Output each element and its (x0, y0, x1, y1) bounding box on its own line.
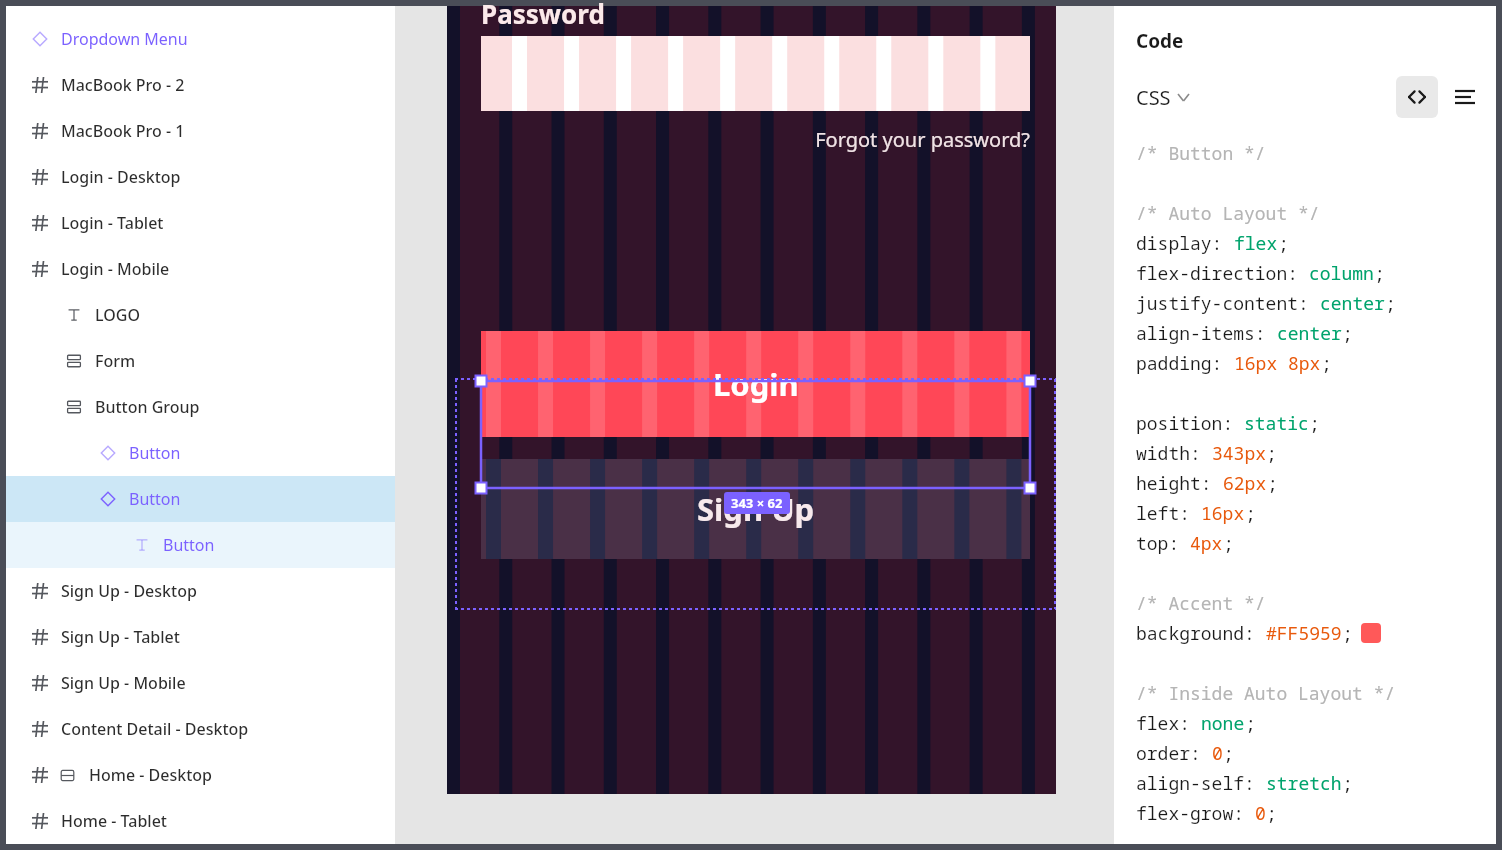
staticText: Login - Tablet (61, 212, 164, 234)
button[interactable]: Login (481, 331, 1030, 437)
staticText: Button (163, 534, 215, 556)
staticText: Home - Desktop (89, 764, 212, 786)
staticText: #FF5959 (1266, 621, 1342, 646)
staticText: ; (1266, 441, 1277, 466)
staticText: left: (1136, 501, 1201, 526)
staticText: Form (95, 350, 136, 372)
staticText: ; (1223, 531, 1234, 556)
staticText: Login (713, 363, 799, 405)
button[interactable]: Sign Up - Mobile (6, 660, 395, 706)
staticText: 0 (1255, 801, 1266, 826)
staticText: none (1201, 711, 1245, 736)
staticText: Sign Up - Desktop (61, 580, 197, 602)
staticText: ; (1385, 291, 1396, 316)
staticText: Login - Mobile (61, 258, 170, 280)
staticText: Home - Tablet (61, 810, 167, 832)
staticText: align-self: (1136, 771, 1266, 796)
button[interactable]: Button Group (6, 384, 395, 430)
button[interactable] (481, 36, 1030, 111)
staticText: ; (1223, 741, 1234, 766)
staticText: Login - Desktop (61, 166, 181, 188)
staticText: Button (129, 488, 181, 510)
staticText: flex: (1136, 711, 1201, 736)
button[interactable]: Show code (1396, 76, 1438, 118)
staticText: static (1244, 411, 1309, 436)
staticText: LOGO (95, 304, 140, 326)
staticText: top: (1136, 531, 1190, 556)
button[interactable]: CSS (1136, 84, 1189, 111)
button[interactable]: MacBook Pro - 2 (6, 62, 395, 108)
staticText: ; (1245, 501, 1256, 526)
staticText: 16px (1201, 501, 1245, 526)
staticText: Code (1136, 28, 1184, 54)
button[interactable]: Sign Up - Tablet (6, 614, 395, 660)
staticText: flex-direction: (1136, 261, 1309, 286)
staticText: center (1277, 321, 1342, 346)
staticText: Sign Up (697, 488, 815, 530)
staticText: 62px (1223, 471, 1267, 496)
button[interactable]: Button (6, 430, 395, 476)
staticText: CSS (1136, 84, 1171, 111)
staticText: ; (1278, 231, 1289, 256)
staticText: display: (1136, 231, 1234, 256)
staticText: 4px (1190, 531, 1223, 556)
button[interactable]: Login - Desktop (6, 154, 395, 200)
staticText: ; (1342, 621, 1353, 646)
staticText: background: (1136, 621, 1266, 646)
button[interactable]: Home - Tablet (6, 798, 395, 844)
button[interactable]: Content Detail - Desktop (6, 706, 395, 752)
button[interactable]: MacBook Pro - 1 (6, 108, 395, 154)
button[interactable]: Forgot your password? (455, 126, 1030, 153)
staticText: /* Auto Layout */ (1136, 201, 1320, 226)
staticText: ; (1267, 471, 1278, 496)
button[interactable]: Sign Up (481, 459, 1030, 559)
button[interactable]: Button (6, 522, 395, 568)
staticText: /* Button */ (1136, 141, 1266, 166)
staticText: position: (1136, 411, 1244, 436)
staticText: ; (1321, 351, 1332, 376)
staticText: ; (1309, 411, 1320, 436)
staticText: Button Group (95, 396, 200, 418)
staticText: padding: (1136, 351, 1234, 376)
staticText: center (1320, 291, 1385, 316)
staticText: stretch (1266, 771, 1342, 796)
staticText: ; (1245, 711, 1256, 736)
staticText: Sign Up - Mobile (61, 672, 186, 694)
staticText: Content Detail - Desktop (61, 718, 249, 740)
staticText: /* Accent */ (1136, 591, 1266, 616)
staticText: 343px (1212, 441, 1266, 466)
staticText: ; (1342, 771, 1353, 796)
staticText: MacBook Pro - 1 (61, 120, 185, 142)
button[interactable]: Home - Desktop (6, 752, 395, 798)
button[interactable]: Form (6, 338, 395, 384)
button[interactable]: Button (6, 476, 395, 522)
staticText: align-items: (1136, 321, 1277, 346)
staticText: order: (1136, 741, 1212, 766)
staticText: height: (1136, 471, 1223, 496)
staticText: ; (1342, 321, 1353, 346)
staticText: 16px 8px (1234, 351, 1321, 376)
staticText: ; (1374, 261, 1385, 286)
staticText: width: (1136, 441, 1212, 466)
button[interactable]: Dropdown Menu (6, 16, 395, 62)
staticText: Dropdown Menu (61, 28, 188, 50)
staticText: Button (129, 442, 181, 464)
staticText: flex (1234, 231, 1278, 256)
staticText: 0 (1212, 741, 1223, 766)
button[interactable]: Login - Tablet (6, 200, 395, 246)
staticText: flex-grow: (1136, 801, 1255, 826)
button[interactable]: LOGO (6, 292, 395, 338)
staticText: column (1309, 261, 1374, 286)
staticText: justify-content: (1136, 291, 1320, 316)
staticText: /* Inside Auto Layout */ (1136, 681, 1396, 706)
staticText: Password (481, 0, 605, 26)
staticText: ; (1266, 801, 1277, 826)
button[interactable]: More options (1448, 80, 1482, 114)
button[interactable]: Login - Mobile (6, 246, 395, 292)
staticText: 343 × 62 (731, 494, 783, 512)
button[interactable]: Sign Up - Desktop (6, 568, 395, 614)
staticText: MacBook Pro - 2 (61, 74, 185, 96)
staticText: Sign Up - Tablet (61, 626, 180, 648)
